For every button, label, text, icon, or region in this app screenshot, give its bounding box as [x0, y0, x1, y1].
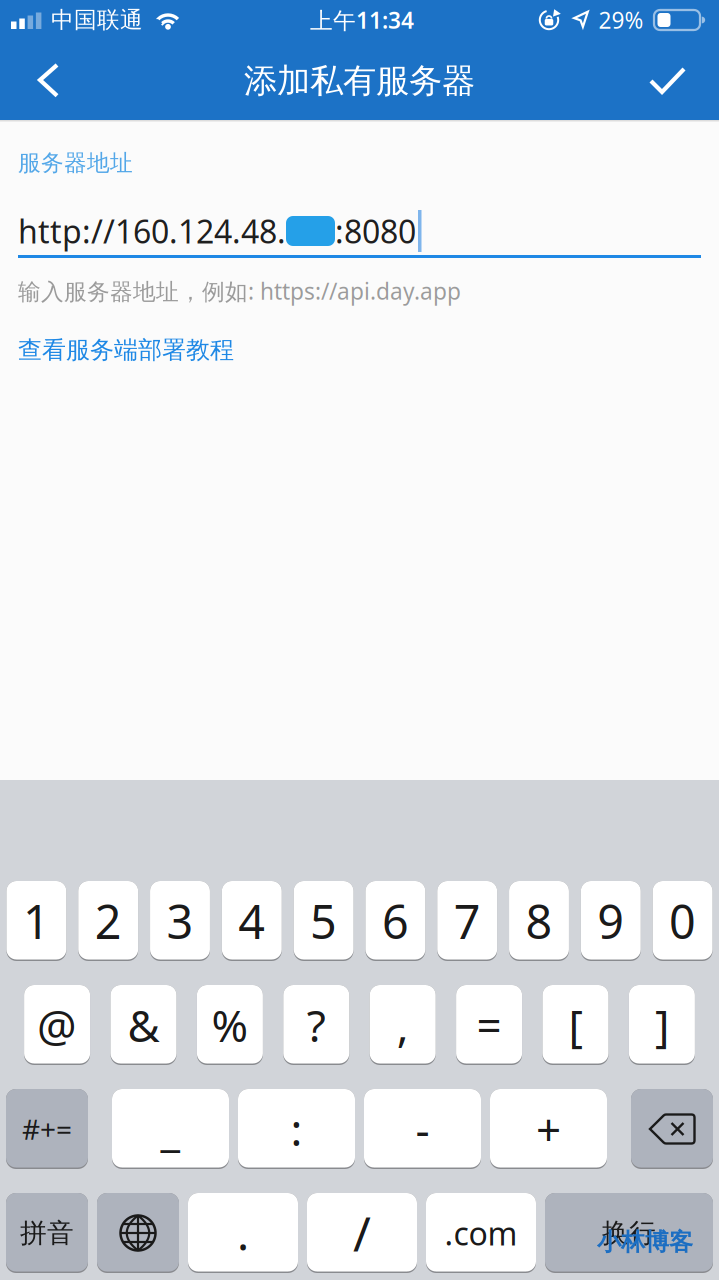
staticText: 输入服务器地址，例如: https://api.day.app: [18, 276, 461, 306]
button[interactable]: 换行: [545, 1193, 713, 1273]
button[interactable]: =: [456, 985, 522, 1065]
button[interactable]: %: [197, 985, 263, 1065]
staticText: 添加私有服务器: [244, 60, 475, 101]
button[interactable]: .com: [426, 1193, 536, 1273]
staticText: 8: [525, 890, 552, 952]
button[interactable]: ?: [283, 985, 349, 1065]
staticText: 中国联通: [51, 6, 143, 34]
button[interactable]: _: [112, 1089, 229, 1169]
staticText: %: [211, 996, 248, 1054]
button[interactable]: 返回: [23, 55, 73, 105]
staticText: 3: [166, 890, 193, 952]
button[interactable]: 3: [150, 881, 210, 961]
button[interactable]: 下一个键盘: [97, 1193, 179, 1273]
staticText: 查看服务端部署教程: [18, 335, 234, 365]
button[interactable]: +: [490, 1089, 607, 1169]
button[interactable]: :: [238, 1089, 355, 1169]
button[interactable]: 删除: [631, 1089, 713, 1169]
staticText: 服务器地址: [18, 149, 133, 177]
staticText: =: [477, 996, 502, 1054]
button[interactable]: 7: [437, 881, 497, 961]
staticText: .com: [444, 1212, 517, 1254]
button[interactable]: 2: [78, 881, 138, 961]
staticText: _: [160, 1100, 180, 1158]
button[interactable]: @: [24, 985, 90, 1065]
staticText: 29%: [598, 5, 643, 35]
staticText: 4: [238, 890, 265, 952]
button[interactable]: -: [364, 1089, 481, 1169]
staticText: 0: [669, 890, 696, 952]
button[interactable]: [: [542, 985, 608, 1065]
staticText: -: [415, 1100, 429, 1158]
staticText: http://160.124.48.: [18, 210, 286, 252]
button[interactable]: 0: [653, 881, 712, 961]
button[interactable]: &: [110, 985, 176, 1065]
staticText: 上午11:34: [310, 5, 414, 35]
staticText: 9: [597, 890, 624, 952]
button[interactable]: 完成: [639, 52, 695, 108]
staticText: 1: [23, 890, 50, 952]
staticText: @: [37, 996, 77, 1054]
button[interactable]: 查看服务端部署教程: [0, 335, 719, 365]
staticText: /: [353, 1201, 371, 1265]
button[interactable]: 8: [509, 881, 569, 961]
staticText: .: [237, 1203, 249, 1263]
button[interactable]: 拼音: [6, 1193, 88, 1273]
staticText: +: [536, 1100, 561, 1158]
button[interactable]: 4: [222, 881, 282, 961]
button[interactable]: 1: [6, 881, 66, 961]
staticText: 小林博客: [597, 1227, 693, 1257]
button[interactable]: 6: [365, 881, 425, 961]
staticText: [: [568, 996, 582, 1054]
button[interactable]: ,: [370, 985, 436, 1065]
button[interactable]: 9: [581, 881, 641, 961]
button[interactable]: ]: [629, 985, 695, 1065]
staticText: ]: [655, 996, 669, 1054]
button[interactable]: 5: [294, 881, 354, 961]
staticText: 7: [454, 890, 481, 952]
staticText: :8080: [335, 210, 416, 252]
staticText: 5: [310, 890, 337, 952]
staticText: 换行: [602, 1217, 656, 1249]
staticText: #+=: [22, 1110, 72, 1148]
staticText: :: [290, 1100, 302, 1158]
staticText: &: [127, 996, 159, 1054]
staticText: ,: [397, 996, 409, 1054]
button[interactable]: #+=: [6, 1089, 88, 1169]
staticText: 拼音: [20, 1217, 74, 1249]
button[interactable]: .: [188, 1193, 298, 1273]
staticText: ?: [307, 996, 326, 1054]
staticText: 6: [382, 890, 409, 952]
staticText: 2: [95, 890, 122, 952]
button[interactable]: /: [307, 1193, 417, 1273]
